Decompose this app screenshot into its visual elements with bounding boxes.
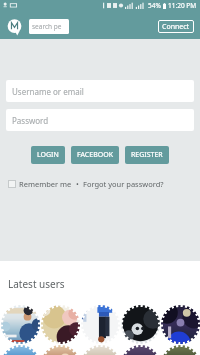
- button[interactable]: User profile: [80, 304, 120, 344]
- button[interactable]: User profile: [0, 304, 40, 344]
- staticText: LOGIN: [37, 150, 59, 160]
- button[interactable]: User profile: [120, 304, 160, 344]
- button[interactable]: User profile: [160, 344, 200, 355]
- button[interactable]: search pe: [29, 19, 69, 34]
- button[interactable]: User profile: [40, 344, 80, 355]
- button[interactable]: REGISTER: [125, 146, 169, 164]
- staticText: FACEBOOK: [77, 150, 113, 160]
- staticText: •: [76, 179, 79, 189]
- button[interactable]: Remember me: [8, 180, 16, 188]
- button[interactable]: Remember me: [19, 179, 72, 189]
- button[interactable]: User profile: [40, 304, 80, 344]
- staticText: Connect: [162, 22, 190, 32]
- button[interactable]: Username or email: [6, 80, 194, 102]
- button[interactable]: Home: [7, 19, 22, 34]
- staticText: 54%: [148, 1, 161, 10]
- button[interactable]: FACEBOOK: [71, 146, 119, 164]
- staticText: Username or email: [12, 86, 84, 97]
- staticText: REGISTER: [131, 150, 163, 160]
- button[interactable]: LOGIN: [31, 146, 65, 164]
- button[interactable]: User profile: [0, 344, 40, 355]
- button[interactable]: Password: [6, 109, 194, 131]
- button[interactable]: User profile: [80, 344, 120, 355]
- button[interactable]: Connect: [158, 20, 194, 33]
- button[interactable]: Forgot your password?: [83, 179, 164, 189]
- button[interactable]: User profile: [120, 344, 160, 355]
- staticText: search pe: [32, 22, 62, 31]
- staticText: 11:20 PM: [168, 1, 197, 10]
- staticText: Password: [12, 115, 49, 126]
- staticText: Latest users: [8, 277, 65, 291]
- button[interactable]: User profile: [160, 304, 200, 344]
